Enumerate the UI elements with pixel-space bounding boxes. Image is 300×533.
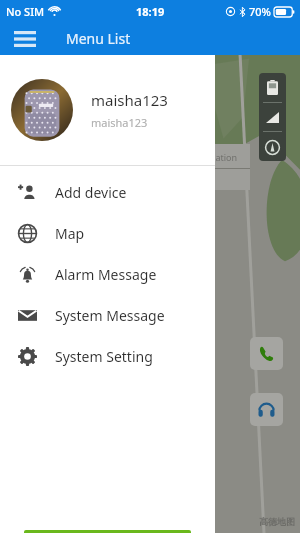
staticText: No SIM — [6, 4, 45, 19]
staticText: Alarm Message — [55, 265, 157, 284]
staticText: Add device — [55, 183, 127, 202]
staticText: maisha123 — [91, 115, 148, 130]
button[interactable]: Locate me — [259, 133, 286, 161]
button[interactable]: System Message — [0, 295, 215, 336]
button[interactable]: Open menu — [9, 23, 41, 55]
button[interactable]: Map — [0, 213, 215, 254]
staticText: 70% — [249, 4, 271, 19]
button[interactable]: Call — [250, 337, 283, 370]
button[interactable]: Add device — [0, 172, 215, 213]
button[interactable]: Alarm Message — [0, 254, 215, 295]
button[interactable]: vigation — [200, 144, 250, 190]
staticText: System Message — [55, 306, 165, 325]
staticText: 18:19 — [136, 4, 165, 19]
staticText: vigation — [203, 151, 238, 163]
button[interactable]: Battery status — [259, 73, 286, 101]
staticText: Menu List — [66, 29, 131, 48]
staticText: System Setting — [55, 347, 153, 366]
staticText: maisha123 — [91, 90, 168, 110]
button[interactable]: maisha123 — [0, 55, 215, 165]
button[interactable]: Switch Account — [24, 530, 191, 533]
staticText: Map — [55, 224, 85, 243]
button[interactable]: Signal strength — [259, 103, 286, 131]
staticText: 高德地图 — [259, 516, 295, 527]
button[interactable]: System Setting — [0, 336, 215, 377]
button[interactable]: Listen — [250, 393, 283, 426]
